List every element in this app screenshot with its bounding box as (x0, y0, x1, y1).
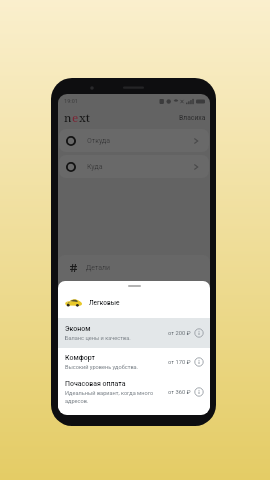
button[interactable]: Легковые (58, 292, 210, 313)
staticText: от 360 ₽ (168, 389, 191, 396)
staticText: n (64, 110, 72, 126)
button[interactable]: Информация о тарифе (194, 387, 204, 397)
button[interactable]: Почасовая оплата (58, 376, 210, 408)
button[interactable]: Информация о тарифе (194, 357, 204, 367)
staticText: Власиха (179, 114, 206, 122)
button[interactable]: Эконом (58, 318, 210, 348)
button[interactable]: Куда (59, 155, 209, 178)
button[interactable]: Откуда (59, 129, 209, 152)
staticText: Высокий уровень удобства. (65, 364, 139, 371)
staticText: Почасовая оплата (65, 380, 126, 388)
staticText: Куда (87, 163, 103, 171)
button[interactable]: Комфорт (58, 348, 210, 376)
staticText: Баланс цены и качества. (65, 335, 131, 342)
staticText: e (72, 110, 79, 126)
button[interactable]: n (63, 109, 92, 127)
staticText: Детали (86, 264, 111, 272)
button[interactable]: Власиха (176, 112, 209, 124)
staticText: 19:01 (64, 98, 78, 104)
button[interactable]: Детали (58, 255, 210, 281)
staticText: Идеальный вариант, когда много адресов. (65, 390, 162, 404)
staticText: от 170 ₽ (168, 359, 191, 366)
staticText: xt (79, 110, 91, 126)
button[interactable]: Информация о тарифе (194, 328, 204, 338)
staticText: Откуда (87, 137, 111, 145)
staticText: от 200 ₽ (168, 330, 191, 337)
staticText: Комфорт (65, 354, 95, 362)
staticText: Эконом (65, 325, 91, 333)
staticText: Легковые (89, 299, 120, 307)
